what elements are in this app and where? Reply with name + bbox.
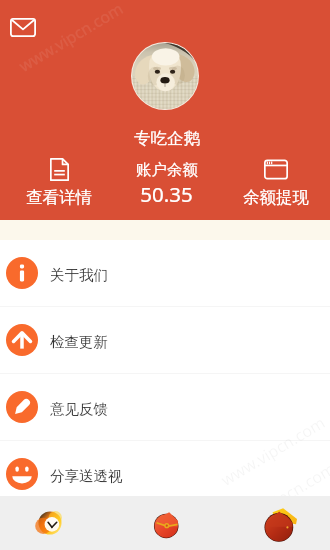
staticText: 查看详情 bbox=[26, 187, 92, 208]
button[interactable]: 关于我们 bbox=[0, 240, 330, 306]
button[interactable]: 意见反馈 bbox=[0, 374, 330, 440]
button[interactable]: 余额提现 bbox=[236, 158, 316, 208]
button[interactable]: Avatar bbox=[131, 42, 199, 110]
staticText: www.vipcn.com bbox=[15, 0, 127, 77]
button[interactable]: Wallet bbox=[110, 496, 220, 550]
staticText: 分享送透视 bbox=[50, 467, 123, 485]
button[interactable]: Recent bbox=[0, 496, 110, 550]
staticText: 关于我们 bbox=[50, 266, 108, 284]
button[interactable]: 查看详情 bbox=[19, 158, 99, 208]
staticText: www.vipcn.com bbox=[227, 457, 330, 537]
button[interactable]: Treasure bbox=[220, 496, 330, 550]
staticText: 专吃企鹅 bbox=[134, 128, 200, 149]
button[interactable]: Messages bbox=[4, 8, 42, 46]
staticText: 意见反馈 bbox=[50, 400, 108, 418]
button[interactable]: 分享送透视 bbox=[0, 441, 330, 507]
staticText: 50.35 bbox=[140, 180, 193, 208]
button[interactable]: 检查更新 bbox=[0, 307, 330, 373]
staticText: 余额提现 bbox=[243, 187, 309, 208]
staticText: 检查更新 bbox=[50, 333, 108, 351]
staticText: 账户余额 bbox=[136, 160, 198, 180]
